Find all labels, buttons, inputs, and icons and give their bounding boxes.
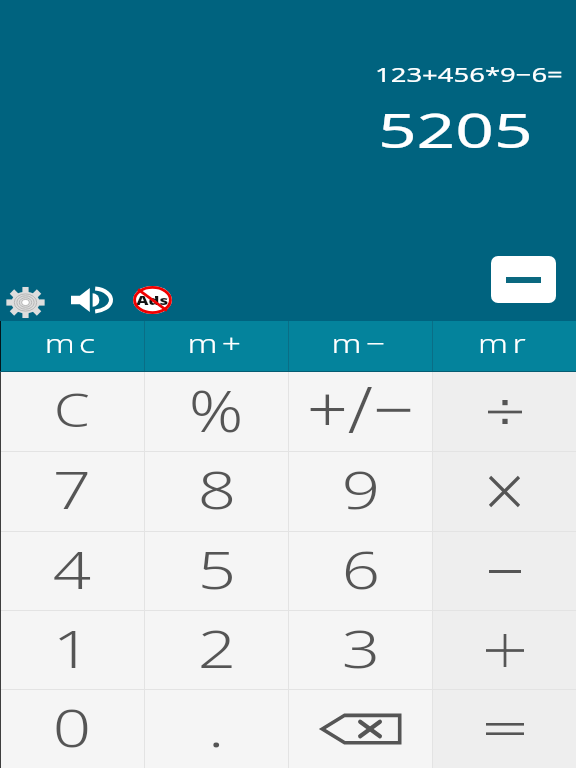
button[interactable]: 2 [145,611,288,689]
button[interactable]: mr [433,321,576,372]
staticText: mc [45,325,100,360]
staticText: 9 [342,453,380,524]
button[interactable]: C [0,372,144,451]
button[interactable]: m− [289,321,432,372]
button[interactable]: Remove ads [130,279,174,321]
button[interactable]: Sound [68,279,113,321]
button[interactable]: 1 [0,611,144,689]
staticText: 3 [342,612,380,683]
button[interactable]: Backspace [289,690,432,768]
staticText: 123+456*9−6= [375,61,563,88]
button[interactable]: 8 [145,452,288,531]
button[interactable]: 4 [0,532,144,610]
staticText: m− [331,325,389,360]
button[interactable]: 0 [0,690,144,768]
button[interactable]: Settings [2,281,48,323]
button[interactable] [433,690,576,768]
staticText: Ads [136,291,169,309]
staticText: 2 [198,612,236,683]
staticText: +/− [307,364,414,443]
button[interactable] [433,611,576,689]
button[interactable]: % [145,372,288,451]
staticText: 7 [53,453,91,524]
staticText: 0 [53,691,91,762]
staticText: 4 [53,533,91,604]
button[interactable] [433,452,576,531]
button[interactable] [433,372,576,451]
button[interactable]: 9 [289,452,432,531]
staticText: % [189,371,244,449]
button[interactable]: Collapse keypad [491,256,556,303]
button[interactable]: 7 [0,452,144,531]
staticText: 6 [342,533,380,604]
staticText: C [54,379,91,440]
button[interactable]: 5 [145,532,288,610]
button[interactable]: m+ [145,321,288,372]
button[interactable]: mc [0,321,144,372]
staticText: 5205 [378,97,533,162]
staticText: . [208,691,225,762]
staticText: mr [478,325,531,360]
button[interactable]: +/− [289,372,432,451]
button[interactable] [433,532,576,610]
button[interactable]: 3 [289,611,432,689]
staticText: 5 [198,533,236,604]
staticText: 8 [198,453,236,524]
button[interactable]: . [145,690,288,768]
staticText: 1 [53,612,91,683]
staticText: m+ [187,325,245,360]
button[interactable]: 6 [289,532,432,610]
